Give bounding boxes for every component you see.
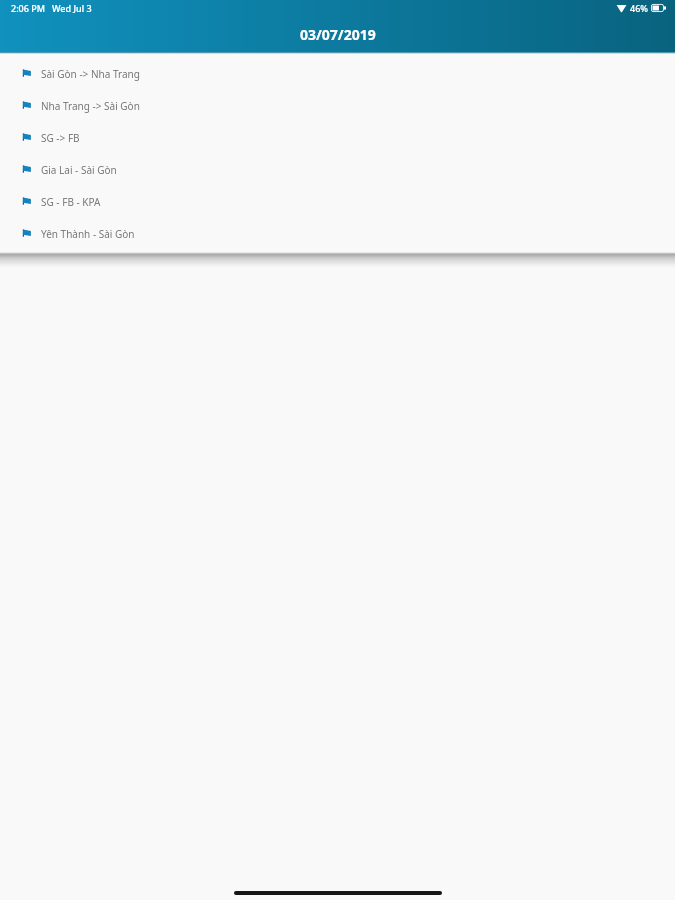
button[interactable]: 03/07/2019 (0, 25, 675, 44)
staticText: SG -> FB (41, 131, 80, 145)
button[interactable]: Nha Trang -> Sài Gòn (0, 90, 675, 122)
staticText: Sài Gòn -> Nha Trang (41, 67, 140, 81)
staticText: Yên Thành - Sài Gòn (41, 227, 135, 241)
button[interactable]: Sài Gòn -> Nha Trang (0, 58, 675, 90)
button[interactable]: Home (234, 891, 442, 895)
staticText: 46% (630, 2, 648, 14)
button[interactable]: Gia Lai - Sài Gòn (0, 154, 675, 186)
staticText: Nha Trang -> Sài Gòn (41, 99, 140, 113)
button[interactable]: SG -> FB (0, 122, 675, 154)
staticText: Wed Jul 3 (52, 2, 92, 14)
staticText: 03/07/2019 (300, 25, 376, 44)
staticText: 2:06 PM (11, 2, 45, 14)
staticText: SG - FB - KPA (41, 195, 101, 209)
button[interactable]: SG - FB - KPA (0, 186, 675, 218)
button[interactable]: Yên Thành - Sài Gòn (0, 218, 675, 250)
staticText: Gia Lai - Sài Gòn (41, 163, 117, 177)
